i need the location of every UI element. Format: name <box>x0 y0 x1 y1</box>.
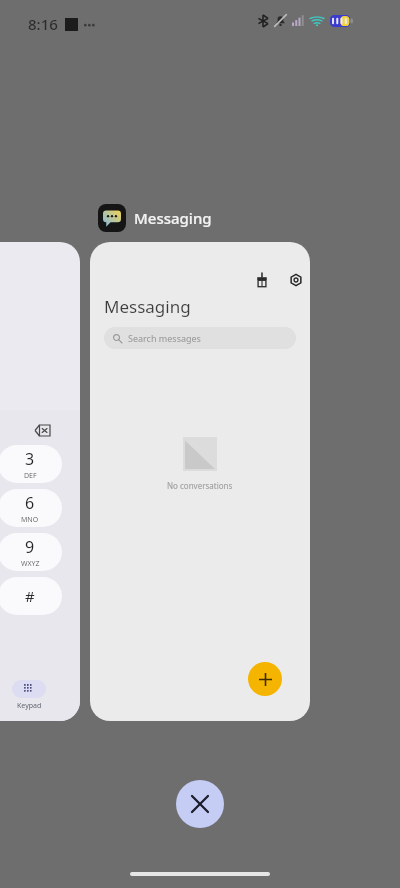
button[interactable]: Backspace <box>0 242 80 721</box>
staticText: # <box>25 586 35 606</box>
staticText: Messaging <box>104 295 191 318</box>
staticText: Search messages <box>128 332 201 344</box>
button[interactable]: 9 <box>0 533 62 571</box>
staticText: Keypad <box>17 701 42 711</box>
button[interactable]: Clear all <box>176 780 224 828</box>
staticText: Messaging <box>134 208 212 228</box>
button[interactable]: 6 <box>0 489 62 527</box>
staticText: No conversations <box>167 480 233 491</box>
button[interactable] <box>12 680 46 698</box>
button[interactable]: Clean up <box>90 242 310 721</box>
button[interactable]: New conversation <box>248 662 282 696</box>
button[interactable]: Backspace <box>32 420 52 440</box>
staticText: 8:16 <box>28 14 58 34</box>
button[interactable]: Search messages <box>104 327 296 349</box>
button[interactable]: Settings <box>284 268 308 292</box>
staticText: DEF <box>24 471 37 481</box>
button[interactable]: # <box>0 577 62 615</box>
button[interactable]: Clean up <box>250 268 274 292</box>
staticText: 9 <box>25 536 35 558</box>
staticText: 3 <box>25 448 35 470</box>
staticText: WXYZ <box>21 559 40 569</box>
button[interactable]: 3 <box>0 445 62 483</box>
staticText: MNO <box>21 515 39 525</box>
staticText: 6 <box>25 492 35 514</box>
